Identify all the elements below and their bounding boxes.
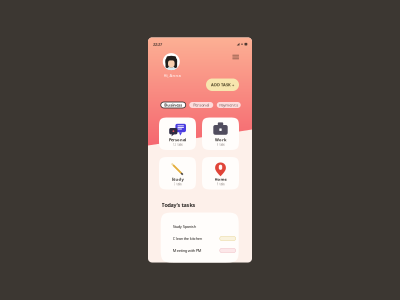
staticText: Personal bbox=[169, 137, 186, 142]
button[interactable]: Personal bbox=[189, 102, 213, 108]
staticText: Payments bbox=[219, 102, 238, 108]
staticText: Today's tasks bbox=[162, 201, 196, 209]
staticText: Home bbox=[214, 176, 226, 182]
button[interactable]: ADD TASK + bbox=[206, 78, 239, 91]
button[interactable]: Business bbox=[161, 102, 186, 108]
staticText: Hi, Anna bbox=[164, 73, 181, 78]
button[interactable]: Clean the kitchen bbox=[161, 232, 239, 244]
staticText: 12 tasks bbox=[172, 143, 182, 146]
button[interactable]: Study Spanish bbox=[161, 220, 239, 232]
staticText: Business bbox=[164, 102, 182, 108]
staticText: 22:27 bbox=[153, 41, 162, 47]
staticText: Personal bbox=[193, 102, 209, 108]
staticText: Study Spanish bbox=[173, 224, 196, 229]
button[interactable]: Home bbox=[202, 157, 239, 189]
button[interactable]: Meeting with PM bbox=[161, 244, 239, 256]
staticText: ADD TASK + bbox=[211, 82, 234, 87]
staticText: 5 tasks bbox=[173, 182, 181, 186]
button[interactable]: Menu bbox=[232, 54, 239, 59]
button[interactable]: Study bbox=[159, 157, 196, 189]
button[interactable]: Personal bbox=[159, 117, 196, 150]
staticText: 9 tasks bbox=[216, 182, 224, 186]
staticText: Study bbox=[171, 176, 183, 182]
staticText: Clean the kitchen bbox=[173, 236, 202, 241]
staticText: Work bbox=[215, 137, 226, 142]
staticText: 8 tasks bbox=[216, 143, 224, 146]
button[interactable]: Work bbox=[202, 117, 239, 150]
button[interactable]: Payments bbox=[217, 102, 241, 108]
staticText: Meeting with PM bbox=[173, 248, 202, 253]
